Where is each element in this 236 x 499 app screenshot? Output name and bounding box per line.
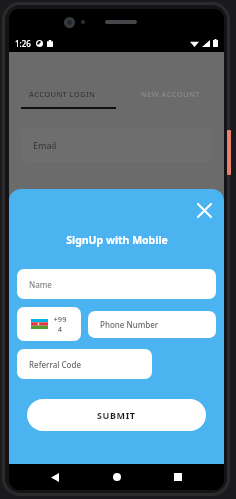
- button[interactable]: Recent apps: [163, 466, 193, 488]
- button[interactable]: Close: [192, 198, 216, 222]
- staticText: +994: [52, 314, 68, 334]
- staticText: Referral Code: [29, 359, 82, 370]
- staticText: NEW ACCOUNT: [141, 89, 200, 99]
- staticText: Phone Number: [100, 319, 159, 330]
- button[interactable]: Back: [40, 466, 70, 488]
- staticText: Email: [33, 139, 57, 151]
- button[interactable]: SUBMIT: [27, 399, 206, 431]
- button[interactable]: Referral Code: [17, 349, 152, 379]
- button[interactable]: Phone Number: [88, 311, 216, 338]
- staticText: ACCOUNT LOGIN: [29, 89, 96, 99]
- button[interactable]: ACCOUNT LOGIN: [9, 81, 116, 107]
- staticText: SUBMIT: [97, 409, 136, 421]
- button[interactable]: Name: [17, 269, 216, 299]
- button[interactable]: Home: [102, 466, 132, 488]
- staticText: SignUp with Mobile: [66, 233, 168, 247]
- button[interactable]: +994: [17, 307, 81, 341]
- button[interactable]: Email: [21, 128, 212, 162]
- button[interactable]: NEW ACCOUNT: [116, 81, 224, 107]
- staticText: 1:26: [15, 38, 31, 49]
- staticText: Name: [29, 279, 52, 290]
